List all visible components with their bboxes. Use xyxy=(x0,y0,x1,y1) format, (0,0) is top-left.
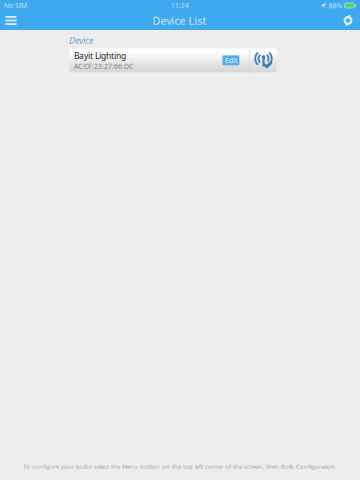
button[interactable]: Refresh xyxy=(337,11,359,30)
staticText: 11:24 xyxy=(171,1,189,10)
staticText: Device xyxy=(69,34,94,46)
button[interactable]: Connect to device xyxy=(250,48,277,72)
button[interactable]: Menu xyxy=(0,11,22,30)
staticText: Edit xyxy=(225,56,237,65)
staticText: Device List xyxy=(152,13,206,28)
staticText: AC:CF:23:27:66:DC xyxy=(74,61,133,71)
button[interactable]: Bayit Lighting xyxy=(69,48,277,72)
staticText: To configure your bulbs select the Menu … xyxy=(23,463,337,470)
button[interactable]: Edit xyxy=(222,55,239,65)
staticText: Bayit Lighting xyxy=(74,50,126,61)
staticText: No SIM xyxy=(4,1,27,10)
staticText: 88% xyxy=(328,1,342,10)
